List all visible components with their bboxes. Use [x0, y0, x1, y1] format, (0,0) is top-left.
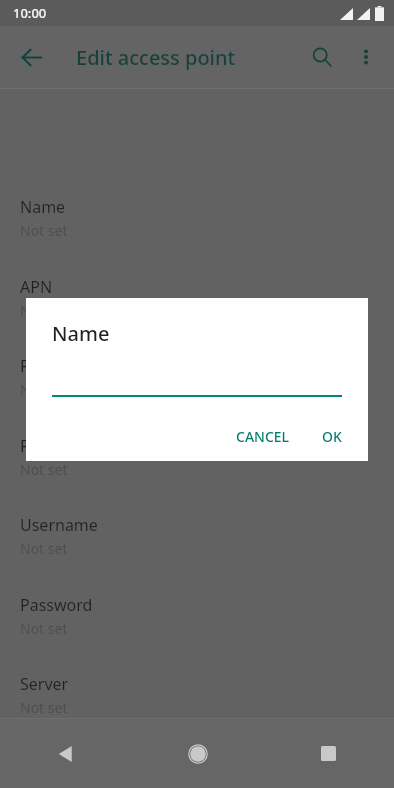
staticText: APN	[20, 276, 53, 298]
button[interactable]: OK	[310, 419, 354, 454]
button[interactable]: MMSC	[0, 747, 394, 788]
button[interactable]: CANCEL	[224, 419, 302, 454]
staticText: Not set	[20, 301, 68, 320]
button[interactable]: Username	[0, 508, 394, 572]
staticText: Not set	[20, 380, 68, 399]
button[interactable]: Port	[0, 429, 394, 493]
staticText: MMSC	[20, 753, 68, 775]
button[interactable]: Recent apps	[263, 719, 394, 788]
button[interactable]	[52, 375, 342, 397]
staticText: Port	[20, 435, 52, 457]
staticText: Not set	[20, 698, 68, 717]
staticText: Proxy	[20, 355, 62, 377]
staticText: Password	[20, 594, 93, 616]
button[interactable]: Password	[0, 588, 394, 652]
button[interactable]: Name	[0, 190, 394, 254]
button[interactable]: Search	[300, 35, 344, 79]
staticText: Name	[20, 196, 66, 218]
button[interactable]: Server	[0, 667, 394, 731]
staticText: Not set	[20, 221, 68, 240]
button[interactable]: APN	[0, 270, 394, 334]
staticText: Edit access point	[76, 44, 236, 71]
button[interactable]: Proxy	[0, 349, 394, 413]
staticText: 10:00	[13, 4, 47, 22]
staticText: OK	[322, 427, 342, 446]
staticText: Username	[20, 514, 98, 536]
staticText: CANCEL	[236, 427, 290, 446]
button[interactable]: More options	[344, 35, 388, 79]
button[interactable]: Home	[132, 719, 263, 788]
staticText: Server	[20, 673, 69, 695]
button[interactable]: Back	[9, 35, 53, 79]
staticText: Not set	[20, 460, 68, 479]
staticText: Not set	[20, 539, 68, 558]
staticText: Name	[52, 320, 110, 347]
staticText: Not set	[20, 619, 68, 638]
button[interactable]: Back	[0, 719, 132, 788]
